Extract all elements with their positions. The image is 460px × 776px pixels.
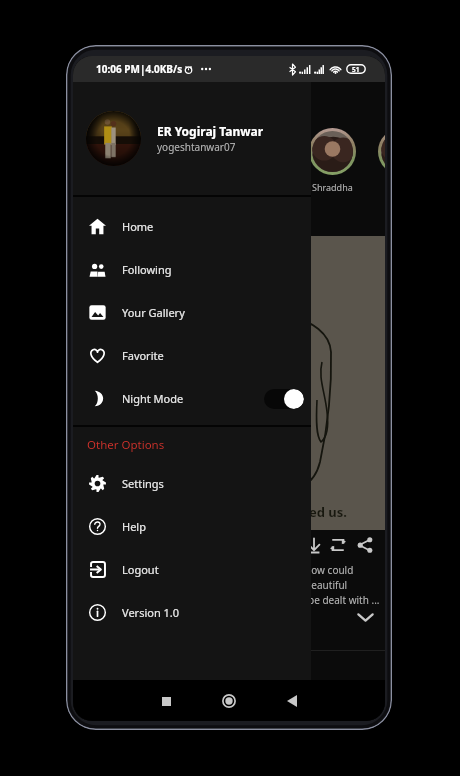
button[interactable]: Home — [73, 205, 311, 248]
button[interactable]: Favorite — [73, 334, 311, 377]
button[interactable]: Expand caption — [357, 611, 374, 623]
staticText: yogeshtanwar07 — [157, 140, 236, 154]
button[interactable]: Help — [73, 505, 311, 548]
staticText: Following — [122, 262, 172, 277]
staticText: that bonded us. — [245, 503, 347, 521]
staticText: Other Options — [87, 437, 311, 453]
staticText: Your Gallery — [122, 305, 185, 320]
staticText: Version 1.0 — [122, 605, 180, 620]
button[interactable]: Night Mode toggle — [264, 389, 304, 409]
staticText: Help — [122, 519, 146, 534]
staticText: Settings — [122, 476, 164, 491]
staticText: Even after how could — [255, 563, 354, 577]
button[interactable]: Share — [357, 537, 373, 553]
staticText: it is so beautiful — [273, 578, 348, 592]
button[interactable]: Back — [276, 685, 308, 717]
staticText: Shraddha — [312, 181, 353, 193]
button[interactable]: Save — [306, 537, 322, 553]
staticText: that has to be dealt with ... — [255, 593, 380, 607]
staticText: Logout — [122, 562, 159, 577]
button[interactable]: Home — [213, 685, 245, 717]
button[interactable]: Night Mode — [73, 377, 311, 420]
staticText: 10:06 PM|4.0KB/s — [96, 62, 183, 76]
button[interactable]: Your Gallery — [73, 291, 311, 334]
button[interactable]: Recents — [150, 685, 182, 717]
button[interactable]: Following — [73, 248, 311, 291]
staticText: Night Mode — [122, 391, 184, 406]
button[interactable]: Settings — [73, 462, 311, 505]
staticText: ER Yogiraj Tanwar — [157, 123, 264, 139]
staticText: 51 — [352, 65, 360, 74]
staticText: Home — [122, 219, 154, 234]
button[interactable]: Logout — [73, 548, 311, 591]
staticText: Favorite — [122, 348, 164, 363]
button[interactable]: Repost — [330, 537, 346, 553]
button[interactable]: Version 1.0 — [73, 591, 311, 634]
